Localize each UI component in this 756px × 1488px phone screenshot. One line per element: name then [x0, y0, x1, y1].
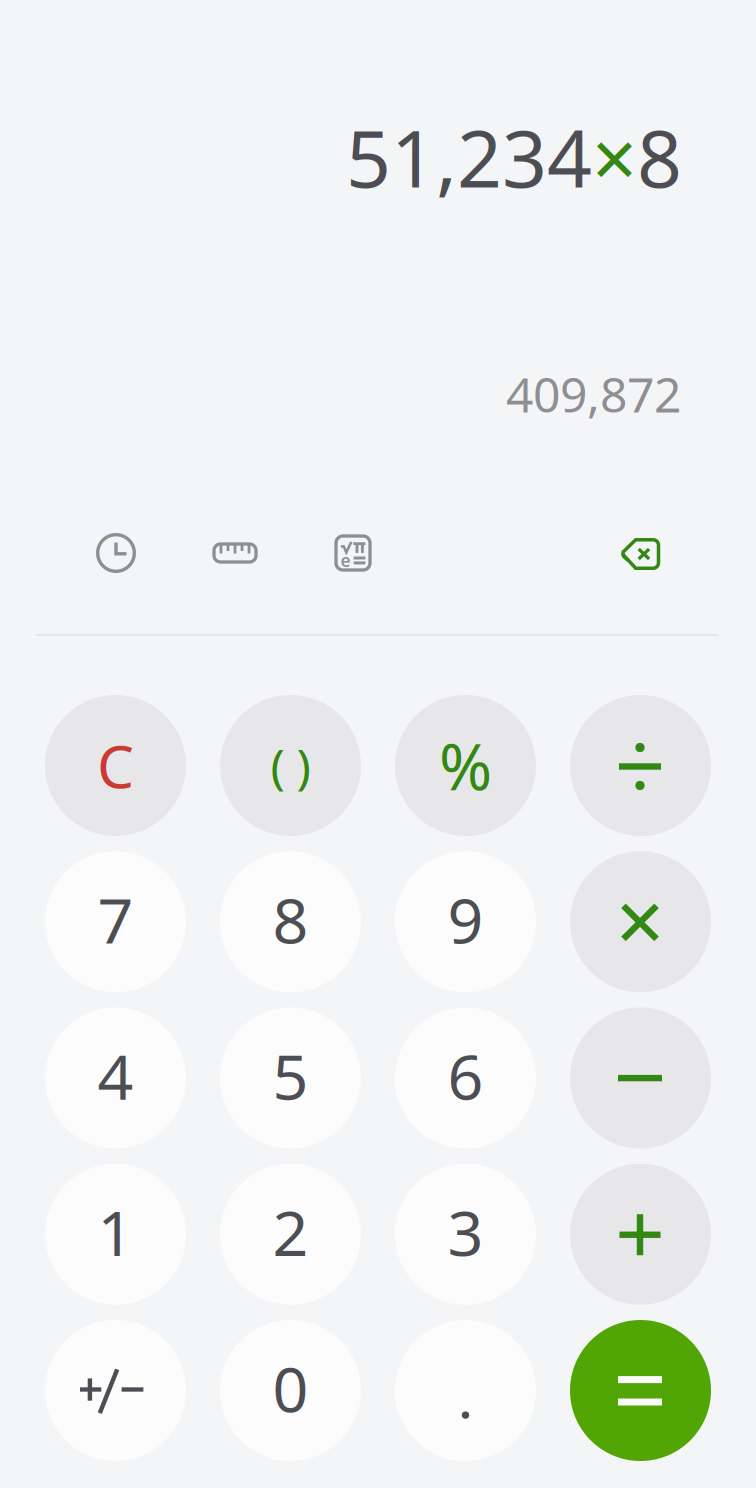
staticText: 5 — [272, 1034, 308, 1117]
button[interactable]: Unit converter — [212, 542, 258, 564]
staticText: 409,872 — [506, 362, 681, 426]
staticText: 9 — [447, 878, 483, 961]
button[interactable]: 8 — [220, 851, 361, 992]
staticText: C — [97, 726, 134, 804]
staticText: 1 — [97, 1190, 133, 1273]
button[interactable]: 1 — [45, 1164, 186, 1305]
staticText: 8 — [272, 878, 308, 961]
button[interactable]: Scientific calculator — [334, 534, 372, 572]
button[interactable]: Plus minus — [45, 1320, 186, 1461]
staticText: 2 — [272, 1190, 308, 1273]
button[interactable]: 9 — [395, 851, 536, 992]
button[interactable]: ( ) — [220, 695, 361, 836]
staticText: 0 — [272, 1346, 308, 1430]
staticText: 51,234 — [346, 105, 592, 209]
button[interactable]: 7 — [45, 851, 186, 992]
button[interactable]: 6 — [395, 1007, 536, 1148]
staticText: e — [340, 549, 350, 572]
button[interactable]: Add — [570, 1164, 711, 1305]
button[interactable]: Multiply — [570, 851, 711, 992]
staticText: × — [592, 105, 637, 209]
staticText: % — [439, 723, 492, 808]
button[interactable]: 0 — [220, 1320, 361, 1461]
staticText: 8 — [637, 105, 682, 209]
button[interactable]: C — [45, 695, 186, 836]
staticText: 7 — [97, 878, 133, 961]
staticText: ( ) — [270, 734, 310, 797]
button[interactable]: 4 — [45, 1007, 186, 1148]
button[interactable]: Equals — [570, 1320, 711, 1461]
staticText: 3 — [447, 1190, 483, 1273]
button[interactable]: Subtract — [570, 1007, 711, 1148]
button[interactable]: 3 — [395, 1164, 536, 1305]
staticText: 4 — [97, 1034, 133, 1117]
button[interactable]: History — [96, 533, 136, 573]
button[interactable]: Decimal point — [395, 1320, 536, 1461]
button[interactable]: % — [395, 695, 536, 836]
button[interactable]: 5 — [220, 1007, 361, 1148]
button[interactable]: 2 — [220, 1164, 361, 1305]
staticText: 6 — [447, 1034, 483, 1117]
button[interactable]: Backspace — [621, 538, 660, 570]
button[interactable]: Divide — [570, 695, 711, 836]
